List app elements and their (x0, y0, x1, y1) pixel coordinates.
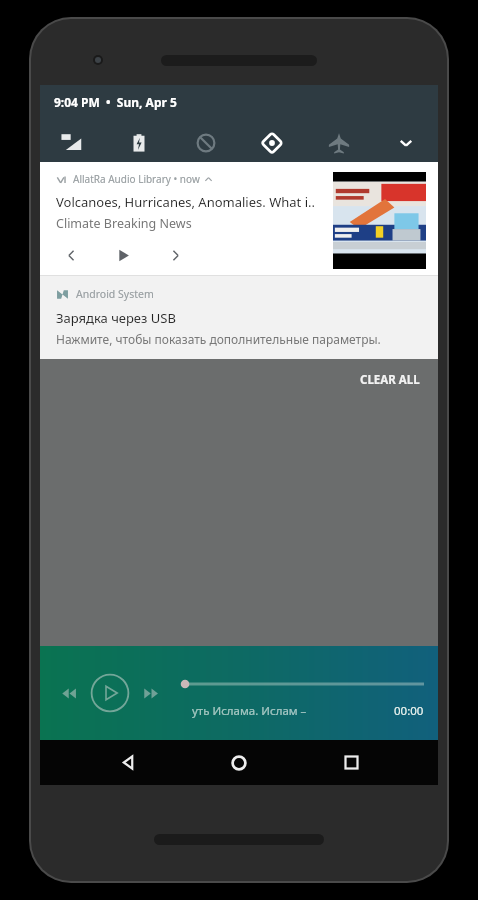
staticText: уть Ислама. Ислам – (192, 703, 310, 719)
button[interactable]: Home (215, 740, 263, 785)
staticText: Зарядка через USB (56, 309, 176, 327)
button[interactable]: Rewind (54, 678, 84, 708)
button[interactable]: Do not disturb (186, 123, 226, 162)
staticText: Climate Breaking News (56, 215, 192, 232)
staticText: AllatRa Audio Library • now (73, 172, 200, 186)
button[interactable]: Play (108, 240, 138, 270)
button[interactable]: Mobile data (52, 123, 92, 162)
staticText: Android System (76, 287, 154, 301)
button[interactable]: CLEAR ALL (352, 366, 428, 394)
button[interactable]: Fast forward (136, 678, 166, 708)
staticText: 9:04 PM • Sun, Apr 5 (54, 94, 177, 110)
button[interactable]: Auto rotate (252, 123, 292, 162)
staticText: Volcanoes, Hurricanes, Anomalies. What i… (56, 193, 315, 211)
button[interactable]: Airplane mode (319, 123, 359, 162)
staticText: Нажмите, чтобы показать дополнительные п… (56, 331, 381, 347)
button[interactable]: Recents (327, 740, 375, 785)
button[interactable]: Battery (119, 123, 159, 162)
button[interactable]: Play (88, 671, 132, 715)
button[interactable]: Expand (386, 123, 426, 162)
staticText: 00:00 (394, 703, 424, 719)
button[interactable]: AllatRa Audio Library • now (40, 162, 438, 275)
button[interactable]: Previous (56, 240, 86, 270)
button[interactable]: Next (160, 240, 190, 270)
staticText: CLEAR ALL (360, 372, 420, 388)
button[interactable]: Back (104, 740, 152, 785)
button[interactable]: Android System (40, 276, 438, 359)
